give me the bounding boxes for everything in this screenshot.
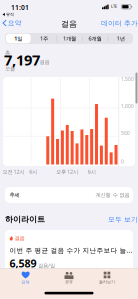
button[interactable]: 둘러보기 <box>92 271 122 285</box>
staticText: 6시 <box>88 168 96 175</box>
staticText: 6,589 <box>9 256 36 270</box>
staticText: 1년 <box>117 35 125 42</box>
staticText: 1개월 <box>63 35 76 42</box>
staticText: 1일 <box>14 35 22 42</box>
button[interactable]: 6개월 <box>83 33 107 44</box>
button[interactable]: 요약 <box>11 271 41 285</box>
staticText: 걸음 <box>39 59 49 65</box>
staticText: 공유 <box>65 279 73 284</box>
button[interactable]: 공유 <box>54 271 84 285</box>
staticText: 걸음 <box>61 19 77 29</box>
button[interactable]: 1주 <box>32 33 56 44</box>
button[interactable]: 1일 <box>6 33 31 44</box>
staticText: 500 <box>121 129 130 136</box>
staticText: 총 <box>5 49 10 56</box>
staticText: 요약 <box>22 280 30 284</box>
staticText: 오전 12시 <box>2 168 24 175</box>
staticText: 11:01 <box>11 3 29 12</box>
staticText: 걸음/일 <box>38 262 55 269</box>
staticText: 데이터 추가 <box>101 19 138 27</box>
staticText: 요약 <box>8 19 22 27</box>
staticText: 1,000 <box>121 102 134 109</box>
staticText: 0 <box>121 158 124 165</box>
staticText: 1,500 <box>121 75 134 82</box>
button[interactable]: 1개월 <box>57 33 82 44</box>
staticText: 뮤직 <box>6 12 14 17</box>
staticText: 모두 보기 <box>108 215 138 224</box>
staticText: 1주 <box>40 35 48 42</box>
staticText: 7,197 <box>4 50 40 69</box>
button[interactable]: 데이터 추가 <box>101 19 138 27</box>
button[interactable]: 걸음 <box>5 230 133 299</box>
staticText: 오후 12시 <box>56 168 78 175</box>
staticText: 이번 주 평균 걸음 수가 지난주보다 늘었습니다. <box>9 246 132 255</box>
button[interactable]: 1년 <box>108 33 133 44</box>
button[interactable]: 모두 보기 <box>108 215 138 224</box>
staticText: 추세 <box>9 192 19 198</box>
staticText: 계산할 수 없음 <box>95 192 129 198</box>
staticText: 둘러보기 <box>99 279 115 284</box>
button[interactable]: 추세 <box>5 187 133 203</box>
staticText: 걸음 <box>14 235 24 242</box>
staticText: LTE <box>111 3 117 9</box>
button[interactable]: 요약 <box>3 19 22 27</box>
staticText: 6시 <box>29 168 37 175</box>
staticText: 하이라이트 <box>5 214 45 224</box>
staticText: 오늘 <box>5 65 15 72</box>
staticText: 6개월 <box>89 35 102 42</box>
